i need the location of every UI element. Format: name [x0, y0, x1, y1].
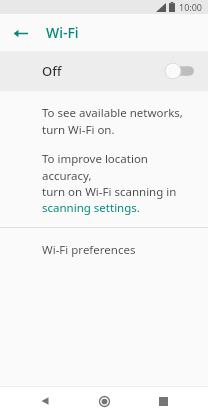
staticText: To see available networks, turn Wi-Fi on…	[42, 105, 183, 137]
button[interactable]: To improve location accuracy, turn on Wi…	[42, 151, 194, 215]
button[interactable]: Wi-Fi preferences	[0, 228, 208, 272]
button[interactable]: Back	[8, 21, 32, 45]
button[interactable]: Off	[0, 51, 208, 91]
staticText: Wi-Fi	[46, 23, 79, 42]
button[interactable]: Home	[90, 387, 118, 415]
staticText: 10:00	[179, 1, 203, 13]
staticText: Wi-Fi preferences	[42, 242, 136, 258]
staticText: Off	[42, 62, 62, 80]
button[interactable]: Recent apps	[149, 387, 177, 415]
button[interactable]: Back	[31, 387, 59, 415]
button[interactable]: Wi-Fi toggle	[164, 62, 194, 80]
